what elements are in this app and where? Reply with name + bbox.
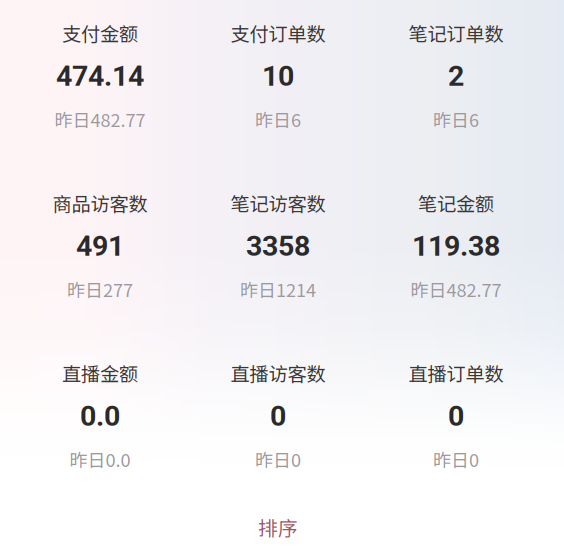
button[interactable]: 笔记访客数 bbox=[189, 191, 367, 300]
staticText: 直播金额 bbox=[62, 359, 138, 387]
staticText: 2 bbox=[448, 59, 464, 93]
staticText: 0 bbox=[448, 399, 464, 433]
staticText: 支付金额 bbox=[62, 19, 138, 47]
staticText: 昨日0 bbox=[433, 446, 479, 472]
staticText: 排序 bbox=[258, 513, 298, 541]
button[interactable]: 直播金额 bbox=[11, 361, 189, 470]
staticText: 昨日482.77 bbox=[410, 276, 501, 302]
staticText: 笔记金额 bbox=[418, 189, 494, 217]
button[interactable]: 笔记金额 bbox=[367, 191, 545, 300]
staticText: 直播访客数 bbox=[230, 359, 325, 387]
button[interactable]: 笔记订单数 bbox=[367, 21, 545, 130]
button[interactable]: 支付订单数 bbox=[189, 21, 367, 130]
staticText: 昨日6 bbox=[433, 106, 479, 132]
staticText: 昨日0.0 bbox=[69, 446, 130, 472]
button[interactable]: 直播订单数 bbox=[367, 361, 545, 470]
button[interactable]: 直播访客数 bbox=[189, 361, 367, 470]
staticText: 0.0 bbox=[80, 399, 120, 433]
staticText: 491 bbox=[76, 229, 124, 263]
staticText: 笔记访客数 bbox=[230, 189, 325, 217]
staticText: 昨日1214 bbox=[240, 276, 316, 302]
staticText: 昨日482.77 bbox=[54, 106, 145, 132]
button[interactable]: 支付金额 bbox=[11, 21, 189, 130]
staticText: 昨日6 bbox=[255, 106, 301, 132]
button[interactable]: 商品访客数 bbox=[11, 191, 189, 300]
staticText: 3358 bbox=[246, 229, 310, 263]
staticText: 474.14 bbox=[56, 59, 144, 93]
staticText: 10 bbox=[262, 59, 294, 93]
staticText: 昨日277 bbox=[67, 276, 133, 302]
staticText: 笔记订单数 bbox=[408, 19, 503, 47]
staticText: 商品访客数 bbox=[52, 189, 147, 217]
button[interactable]: 排序 bbox=[11, 509, 545, 545]
staticText: 0 bbox=[270, 399, 286, 433]
staticText: 昨日0 bbox=[255, 446, 301, 472]
staticText: 119.38 bbox=[412, 229, 500, 263]
staticText: 支付订单数 bbox=[230, 19, 325, 47]
staticText: 直播订单数 bbox=[408, 359, 503, 387]
